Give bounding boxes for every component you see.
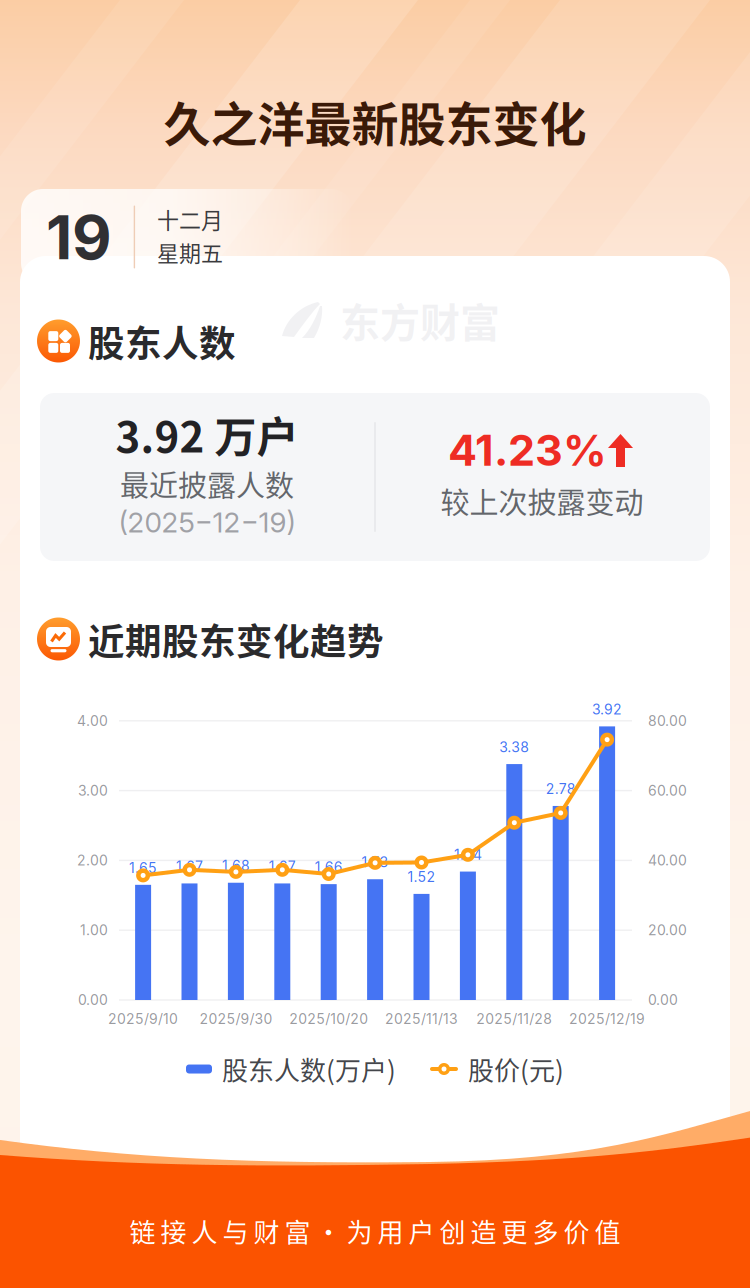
staticText: 2025/11/13 bbox=[385, 1010, 458, 1027]
staticText: 较上次披露变动 bbox=[440, 480, 643, 522]
staticText: 十二月 bbox=[157, 203, 223, 235]
staticText: 2025/10/20 bbox=[289, 1010, 368, 1027]
staticText: 1.65 bbox=[129, 859, 157, 876]
staticText: 2025/9/10 bbox=[108, 1010, 178, 1027]
staticText: 41.23% bbox=[448, 424, 607, 476]
staticText: 1.67 bbox=[176, 858, 203, 875]
staticText: 1.00 bbox=[80, 922, 108, 939]
staticText: 2025/9/30 bbox=[199, 1010, 272, 1027]
staticText: 0.00 bbox=[648, 991, 678, 1008]
staticText: 股东人数 bbox=[88, 315, 236, 367]
staticText: 3.38 bbox=[499, 739, 529, 755]
staticText: 1.84 bbox=[454, 846, 482, 863]
staticText: 3.00 bbox=[78, 782, 108, 799]
staticText: 最近披露人数 bbox=[120, 463, 294, 505]
staticText: 1.67 bbox=[269, 858, 296, 875]
staticText: 股价(元) bbox=[468, 1050, 564, 1088]
staticText: 股东人数(万户) bbox=[222, 1050, 396, 1088]
staticText: 1.68 bbox=[222, 857, 250, 874]
staticText: 2.78 bbox=[546, 780, 576, 797]
staticText: 3.92 万户 bbox=[115, 404, 298, 465]
staticText: 3.92 bbox=[592, 701, 622, 718]
staticText: 40.00 bbox=[648, 852, 687, 869]
staticText: 2025/12/19 bbox=[569, 1010, 645, 1027]
staticText: 2.00 bbox=[77, 852, 108, 869]
staticText: 0.00 bbox=[78, 991, 108, 1008]
staticText: 1.73 bbox=[362, 854, 389, 871]
staticText: 链接人与财富·为用户创造更多价值 bbox=[129, 1212, 620, 1250]
staticText: 80.00 bbox=[648, 712, 687, 729]
staticText: 1.66 bbox=[315, 859, 343, 876]
staticText: 1.52 bbox=[407, 868, 435, 885]
staticText: 久之洋最新股东变化 bbox=[163, 87, 586, 155]
staticText: 20.00 bbox=[648, 922, 687, 939]
staticText: 4.00 bbox=[77, 712, 108, 729]
staticText: (2025−12−19) bbox=[118, 505, 295, 539]
staticText: 60.00 bbox=[648, 782, 687, 799]
staticText: 近期股东变化趋势 bbox=[88, 613, 384, 665]
staticText: 东方财富 bbox=[340, 291, 500, 349]
staticText: 星期五 bbox=[157, 236, 223, 268]
staticText: 2025/11/28 bbox=[476, 1010, 552, 1027]
staticText: 19 bbox=[46, 200, 112, 274]
